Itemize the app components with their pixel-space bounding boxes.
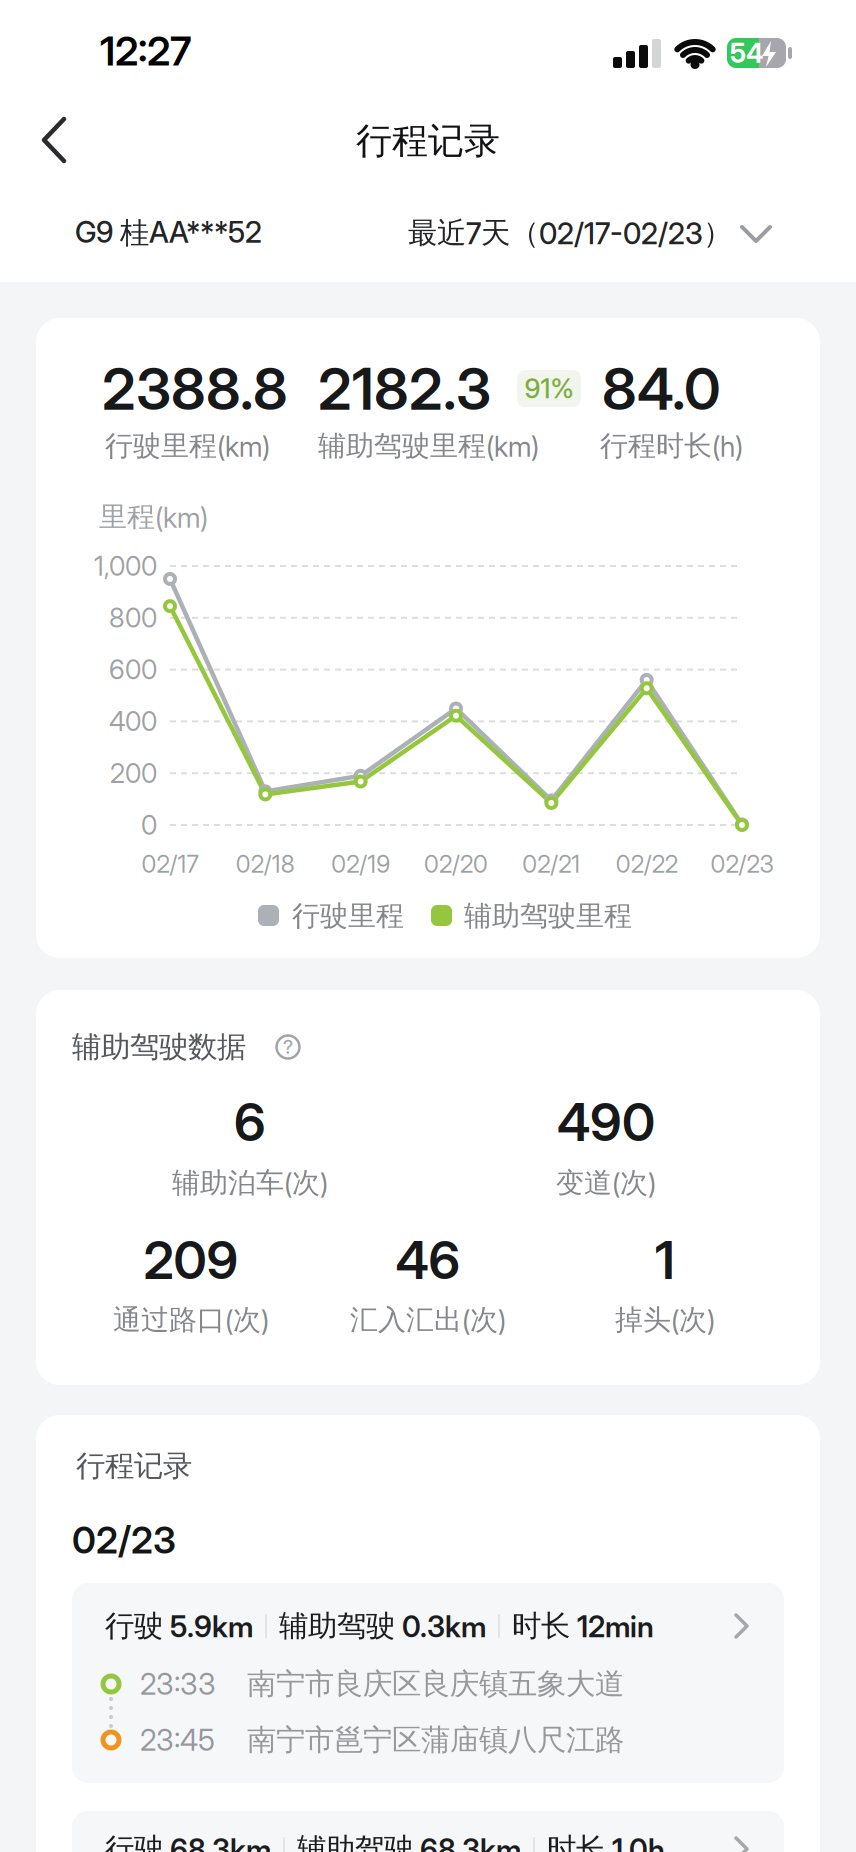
staticText: 里程(km): [99, 500, 208, 534]
staticText: 行程时长(h): [600, 429, 743, 463]
staticText: 行驶 5.9km: [105, 1608, 253, 1644]
staticText: 02/21: [522, 850, 580, 878]
staticText: 时长 1.0h: [547, 1831, 665, 1852]
staticText: 400: [109, 706, 157, 737]
staticText: ?: [283, 1036, 293, 1058]
staticText: 490: [557, 1091, 655, 1153]
staticText: 02/17: [141, 850, 198, 878]
staticText: 800: [109, 602, 157, 634]
staticText: 23:33: [140, 1667, 216, 1701]
staticText: 23:45: [140, 1723, 215, 1757]
staticText: 汇入汇出(次): [350, 1303, 506, 1337]
staticText: 91%: [524, 373, 573, 404]
staticText: 0: [141, 809, 157, 841]
staticText: 02/23: [72, 1518, 176, 1562]
staticText: 通过路口(次): [113, 1303, 269, 1337]
staticText: 1: [655, 1229, 675, 1291]
staticText: 54: [730, 37, 764, 69]
staticText: 46: [395, 1229, 460, 1291]
staticText: 600: [109, 654, 157, 685]
staticText: 最近7天（02/17-02/23）: [408, 215, 732, 251]
button[interactable]: 行驶 68.3km: [72, 1811, 784, 1852]
button[interactable]: 最近7天（02/17-02/23）: [320, 209, 780, 257]
staticText: 6: [234, 1091, 266, 1153]
staticText: 南宁市邕宁区蒲庙镇八尺江路: [247, 1722, 624, 1758]
staticText: G9 桂AA***52: [75, 215, 262, 251]
staticText: 02/20: [424, 850, 488, 878]
staticText: 行驶里程(km): [105, 429, 270, 463]
button[interactable]: 行驶 5.9km: [72, 1583, 784, 1783]
staticText: 辅助驾驶 68.3km: [297, 1831, 521, 1852]
staticText: 02/19: [331, 850, 390, 878]
staticText: 辅助泊车(次): [172, 1166, 328, 1200]
staticText: 南宁市良庆区良庆镇五象大道: [247, 1666, 624, 1702]
staticText: 时长 12min: [512, 1608, 654, 1644]
staticText: 02/22: [616, 850, 678, 878]
staticText: 2182.3: [318, 355, 491, 423]
staticText: 行程记录: [76, 1448, 192, 1484]
staticText: 行程记录: [356, 119, 500, 163]
button[interactable]: Back: [28, 108, 92, 172]
staticText: 变道(次): [556, 1166, 656, 1200]
staticText: 84.0: [602, 355, 721, 423]
staticText: 12:27: [100, 27, 192, 75]
staticText: 209: [143, 1229, 238, 1291]
staticText: 02/23: [710, 850, 773, 878]
staticText: 行驶 68.3km: [105, 1831, 271, 1852]
staticText: 1,000: [94, 550, 157, 582]
staticText: 02/18: [236, 850, 295, 878]
staticText: 辅助驾驶 0.3km: [279, 1608, 486, 1644]
staticText: 辅助驾驶数据: [72, 1029, 246, 1065]
staticText: 辅助驾驶里程: [464, 899, 632, 933]
staticText: 200: [110, 757, 157, 789]
staticText: 2388.8: [102, 355, 288, 423]
staticText: 辅助驾驶里程(km): [318, 429, 539, 463]
button[interactable]: Help: [273, 1032, 303, 1062]
staticText: 行驶里程: [292, 899, 404, 933]
staticText: 掉头(次): [615, 1303, 715, 1337]
